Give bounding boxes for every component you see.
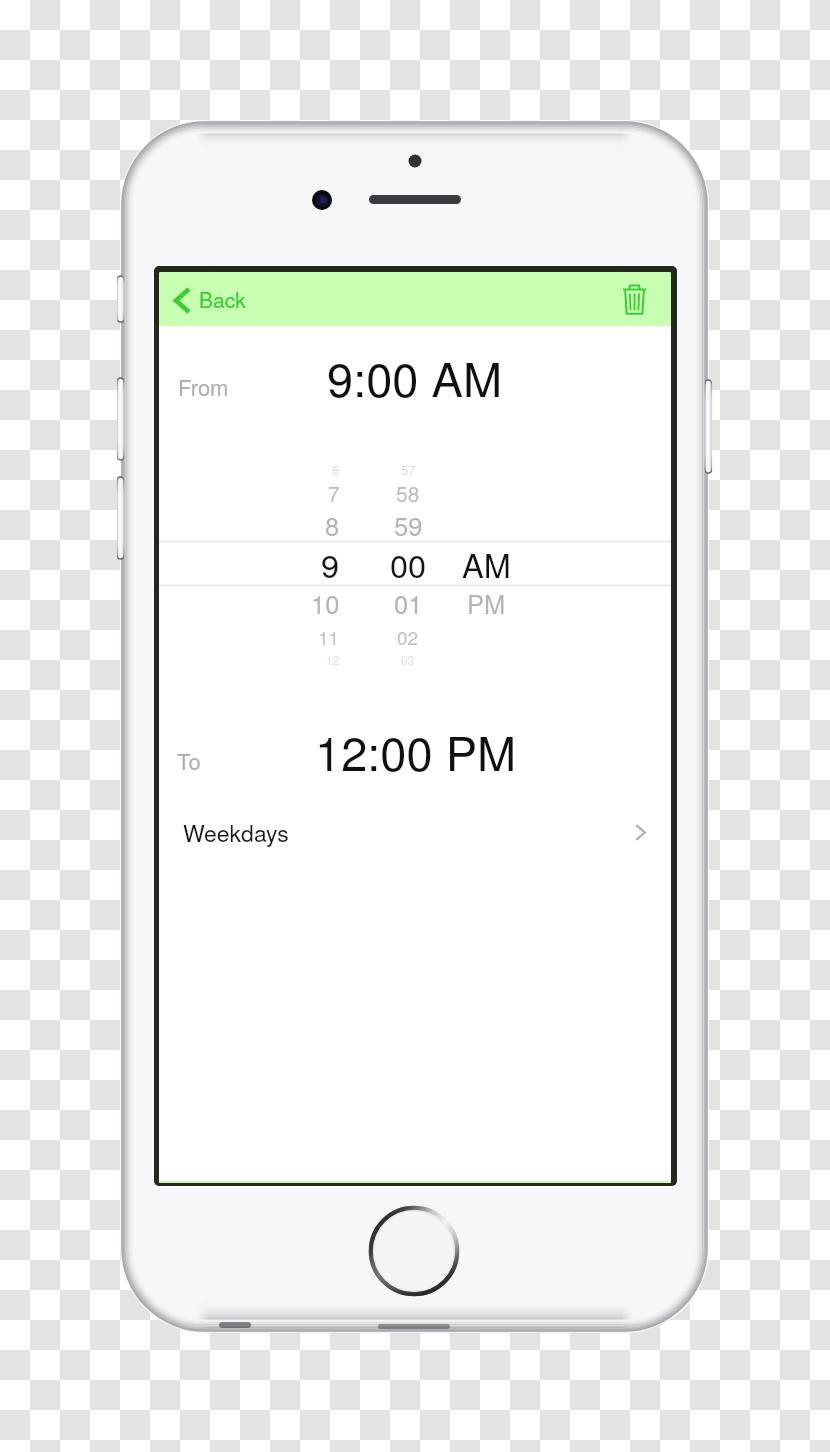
staticText: 12:00 PM — [315, 717, 517, 784]
staticText: 7 — [328, 478, 340, 508]
button[interactable]: Weekdays — [159, 804, 671, 860]
staticText: 8 — [325, 507, 340, 544]
button[interactable]: Delete — [608, 272, 671, 326]
staticText: 12 — [326, 651, 340, 668]
staticText: 9:00 AM — [327, 343, 503, 410]
staticText: 59 — [394, 507, 423, 544]
staticText: Weekdays — [183, 816, 289, 849]
staticText: 10 — [311, 585, 340, 622]
staticText: 57 — [401, 460, 416, 479]
staticText: 00 — [390, 541, 427, 588]
staticText: 02 — [397, 623, 419, 650]
staticText: 03 — [401, 651, 415, 668]
staticText: Back — [199, 284, 246, 314]
staticText: AM — [462, 541, 511, 588]
button[interactable]: Back — [159, 272, 260, 326]
staticText: 6 — [332, 460, 340, 479]
staticText: PM — [467, 585, 506, 622]
staticText: 11 — [318, 623, 340, 650]
staticText: From — [178, 371, 229, 403]
staticText: 58 — [396, 478, 420, 508]
staticText: 01 — [394, 585, 423, 622]
staticText: 9 — [321, 541, 340, 588]
staticText: To — [177, 745, 201, 777]
